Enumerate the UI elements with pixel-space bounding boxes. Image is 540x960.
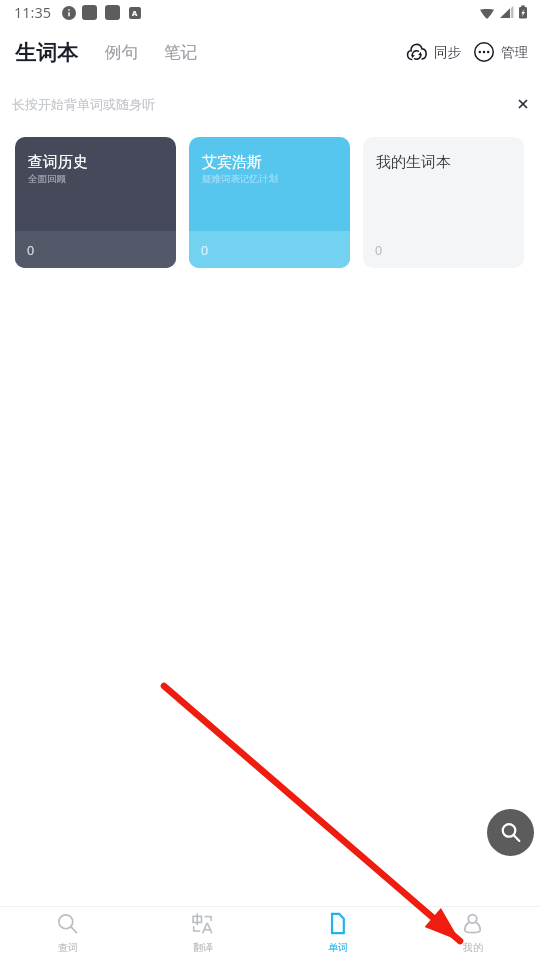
staticText: 疑难词表记忆计划 (202, 173, 278, 185)
button[interactable]: 同步 (406, 42, 461, 63)
staticText: 例句 (105, 42, 138, 63)
button[interactable]: 我的 (405, 907, 540, 960)
button[interactable]: 管理 (474, 42, 528, 62)
staticText: A (132, 8, 138, 18)
button[interactable]: 查词 (0, 907, 135, 960)
staticText: 查词 (58, 941, 78, 954)
staticText: 0 (27, 242, 35, 259)
staticText: 我的 (463, 941, 483, 954)
button[interactable]: Close (513, 94, 533, 114)
staticText: 0 (375, 242, 383, 259)
staticText: 笔记 (164, 42, 197, 63)
staticText: 生词本 (15, 40, 78, 66)
button[interactable]: 我的生词本 (363, 137, 524, 268)
staticText: 0 (201, 242, 209, 259)
staticText: 11:35 (14, 2, 52, 22)
button[interactable]: 翻译 (135, 907, 270, 960)
button[interactable]: 艾宾浩斯 (189, 137, 350, 268)
button[interactable]: 查词历史 (15, 137, 176, 268)
staticText: 翻译 (193, 941, 213, 954)
staticText: 艾宾浩斯 (202, 153, 262, 172)
staticText: 我的生词本 (376, 153, 451, 172)
staticText: 长按开始背单词或随身听 (12, 96, 155, 112)
staticText: 查词历史 (28, 153, 88, 172)
button[interactable]: 生词本 (15, 40, 78, 66)
staticText: 管理 (501, 44, 528, 61)
staticText: 同步 (434, 44, 461, 61)
button[interactable]: Search (487, 809, 534, 856)
button[interactable]: 单词 (270, 907, 405, 960)
staticText: 全面回顾 (28, 173, 66, 185)
button[interactable]: 例句 (105, 45, 138, 66)
button[interactable]: 笔记 (164, 45, 197, 66)
staticText: 单词 (328, 941, 348, 954)
